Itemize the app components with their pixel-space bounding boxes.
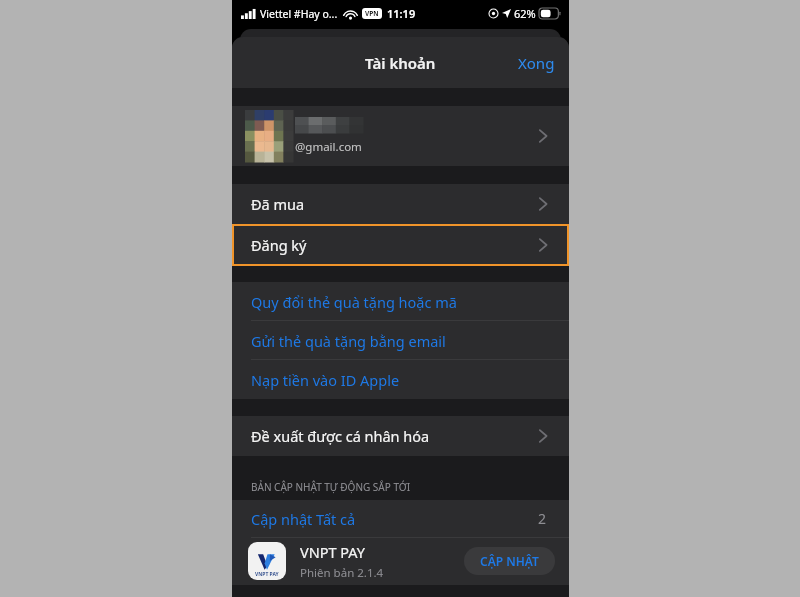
button[interactable]: Nạp tiền vào ID Apple bbox=[232, 360, 569, 399]
button[interactable]: Gửi thẻ quà tặng bằng email bbox=[232, 321, 569, 360]
staticText: Phiên bản 2.1.4 bbox=[300, 565, 384, 581]
button[interactable]: Cập nhật Tất cả bbox=[232, 500, 569, 537]
button[interactable]: Đề xuất được cá nhân hóa bbox=[232, 416, 569, 456]
staticText: Cập nhật Tất cả bbox=[251, 509, 356, 529]
staticText: Đã mua bbox=[251, 194, 305, 214]
button[interactable]: CẬP NHẬT bbox=[464, 547, 555, 575]
staticText: Xong bbox=[518, 53, 555, 73]
button[interactable]: Xong bbox=[504, 43, 569, 83]
staticText: 11:19 bbox=[387, 6, 416, 21]
staticText: Đề xuất được cá nhân hóa bbox=[251, 426, 430, 446]
staticText: VNPT PAY bbox=[300, 542, 365, 562]
button[interactable]: @gmail.com bbox=[232, 106, 569, 166]
staticText: Nạp tiền vào ID Apple bbox=[251, 370, 400, 390]
staticText: BẢN CẬP NHẬT TỰ ĐỘNG SẮP TỚI bbox=[251, 480, 411, 494]
staticText: Tài khoản bbox=[365, 53, 436, 73]
staticText: Đăng ký bbox=[251, 235, 307, 255]
button[interactable]: Đăng ký bbox=[232, 224, 569, 266]
staticText: VNPT PAY bbox=[255, 571, 279, 578]
staticText: VPN bbox=[365, 9, 379, 18]
staticText: CẬP NHẬT bbox=[480, 553, 539, 569]
staticText: Viettel #Hay o... bbox=[260, 7, 338, 21]
staticText: Gửi thẻ quà tặng bằng email bbox=[251, 331, 446, 351]
staticText: Quy đổi thẻ quà tặng hoặc mã bbox=[251, 292, 457, 312]
button[interactable]: Đã mua bbox=[232, 184, 569, 224]
button[interactable]: Quy đổi thẻ quà tặng hoặc mã bbox=[232, 282, 569, 321]
staticText: @gmail.com bbox=[295, 139, 362, 155]
button[interactable]: VNPT PAY bbox=[232, 537, 569, 585]
staticText: 2 bbox=[538, 509, 547, 528]
staticText: 62% bbox=[514, 6, 536, 21]
